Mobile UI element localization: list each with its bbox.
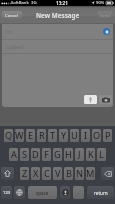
button[interactable]: U [70, 129, 79, 142]
staticText: Z [22, 167, 28, 180]
button[interactable]: Add contact [103, 28, 110, 35]
staticText: 90% [96, 0, 105, 6]
button[interactable]: Delete [101, 167, 114, 180]
staticText: P [105, 129, 111, 142]
staticText: 13:21 [56, 0, 68, 6]
button[interactable]: F [42, 148, 51, 161]
button[interactable]: M [86, 167, 95, 180]
staticText: J [78, 148, 81, 161]
button[interactable]: Send [97, 11, 113, 20]
button[interactable]: Voice message [84, 95, 97, 104]
staticText: . [78, 189, 80, 196]
button[interactable]: Q [4, 129, 13, 142]
staticText: 3G [31, 0, 37, 6]
staticText: V [55, 167, 61, 180]
staticText: A [11, 148, 17, 161]
button[interactable]: Cancel [2, 11, 22, 20]
button[interactable]: R [37, 129, 46, 142]
button[interactable]: H [64, 148, 73, 161]
button[interactable]: D [31, 148, 40, 161]
staticText: return [94, 190, 108, 196]
button[interactable]: J [75, 148, 84, 161]
staticText: K [88, 148, 94, 161]
staticText: C [44, 167, 50, 180]
button[interactable]: S [20, 148, 29, 161]
staticText: Send [100, 13, 110, 19]
staticText: Subject [5, 43, 24, 50]
staticText: 123 [3, 190, 11, 196]
button[interactable]: O [92, 129, 101, 142]
staticText: I [84, 129, 88, 142]
button[interactable]: space [28, 186, 57, 199]
button[interactable]: I [81, 129, 90, 142]
staticText: B [66, 167, 72, 180]
button[interactable]: X [31, 167, 40, 180]
button[interactable]: To: [2, 24, 113, 39]
button[interactable]: Dictation [60, 186, 70, 199]
button[interactable]: . [73, 186, 84, 199]
staticText: F [44, 148, 49, 161]
button[interactable]: Change keyboard [14, 186, 25, 199]
button[interactable]: N [75, 167, 84, 180]
button[interactable]: Shift [1, 167, 14, 180]
staticText: E [28, 129, 34, 142]
button[interactable]: V [53, 167, 62, 180]
button[interactable]: A [9, 148, 18, 161]
staticText: G [54, 148, 61, 161]
button[interactable]: L [97, 148, 106, 161]
staticText: H [65, 148, 72, 161]
staticText: N [76, 167, 83, 180]
staticText: New Message [36, 11, 80, 20]
button[interactable]: 123 [1, 186, 12, 199]
button[interactable]: W [15, 129, 24, 142]
button[interactable]: G [53, 148, 62, 161]
button[interactable]: C [42, 167, 51, 180]
staticText: T [50, 129, 56, 142]
button[interactable]: T [48, 129, 57, 142]
staticText: U [71, 129, 78, 142]
staticText: SoftBank [11, 0, 29, 6]
staticText: W [15, 129, 24, 142]
staticText: D [32, 148, 39, 161]
button[interactable]: Y [59, 129, 68, 142]
staticText: M [86, 167, 95, 180]
button[interactable]: Z [20, 167, 29, 180]
staticText: R [39, 129, 45, 142]
button[interactable]: return [87, 186, 114, 199]
button[interactable]: B [64, 167, 73, 180]
button[interactable]: K [86, 148, 95, 161]
staticText: space [36, 190, 49, 196]
staticText: To: [5, 28, 13, 35]
staticText: O [93, 129, 101, 142]
button[interactable]: E [26, 129, 35, 142]
button[interactable]: P [103, 129, 112, 142]
staticText: S [22, 148, 28, 161]
staticText: Y [61, 129, 67, 142]
staticText: L [99, 148, 104, 161]
staticText: X [33, 167, 39, 180]
button[interactable]: Camera [99, 95, 112, 104]
staticText: Cancel [5, 13, 19, 19]
staticText: Q [5, 129, 13, 142]
